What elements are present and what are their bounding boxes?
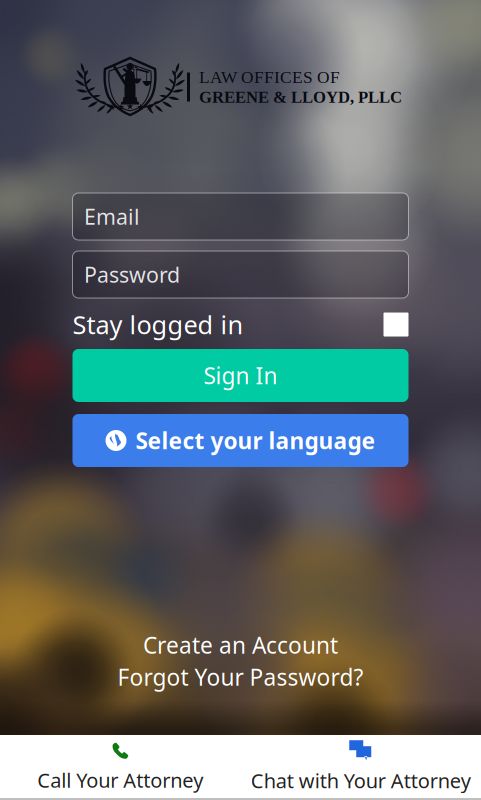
- staticText: Call Your Attorney: [37, 767, 203, 793]
- staticText: Forgot Your Password?: [117, 662, 363, 692]
- button[interactable]: Call Your Attorney: [0, 735, 240, 798]
- button[interactable]: Stay logged in: [383, 312, 408, 336]
- staticText: Select your language: [135, 425, 375, 455]
- button[interactable]: Email: [72, 193, 408, 240]
- button[interactable]: Create an Account: [143, 630, 338, 660]
- staticText: Email: [84, 202, 140, 231]
- staticText: LAW OFFICES OF: [199, 68, 340, 87]
- button[interactable]: Forgot Your Password?: [117, 662, 363, 692]
- staticText: Stay logged in: [72, 308, 243, 341]
- button[interactable]: Chat with Your Attorney: [240, 735, 481, 798]
- button[interactable]: Sign In: [72, 349, 408, 402]
- staticText: Password: [84, 260, 180, 289]
- button[interactable]: Password: [72, 251, 408, 298]
- button[interactable]: Select your language: [72, 414, 408, 467]
- staticText: Create an Account: [143, 630, 338, 660]
- staticText: Chat with Your Attorney: [251, 767, 471, 794]
- staticText: GREENE & LLOYD, PLLC: [199, 88, 402, 106]
- staticText: Sign In: [203, 360, 277, 390]
